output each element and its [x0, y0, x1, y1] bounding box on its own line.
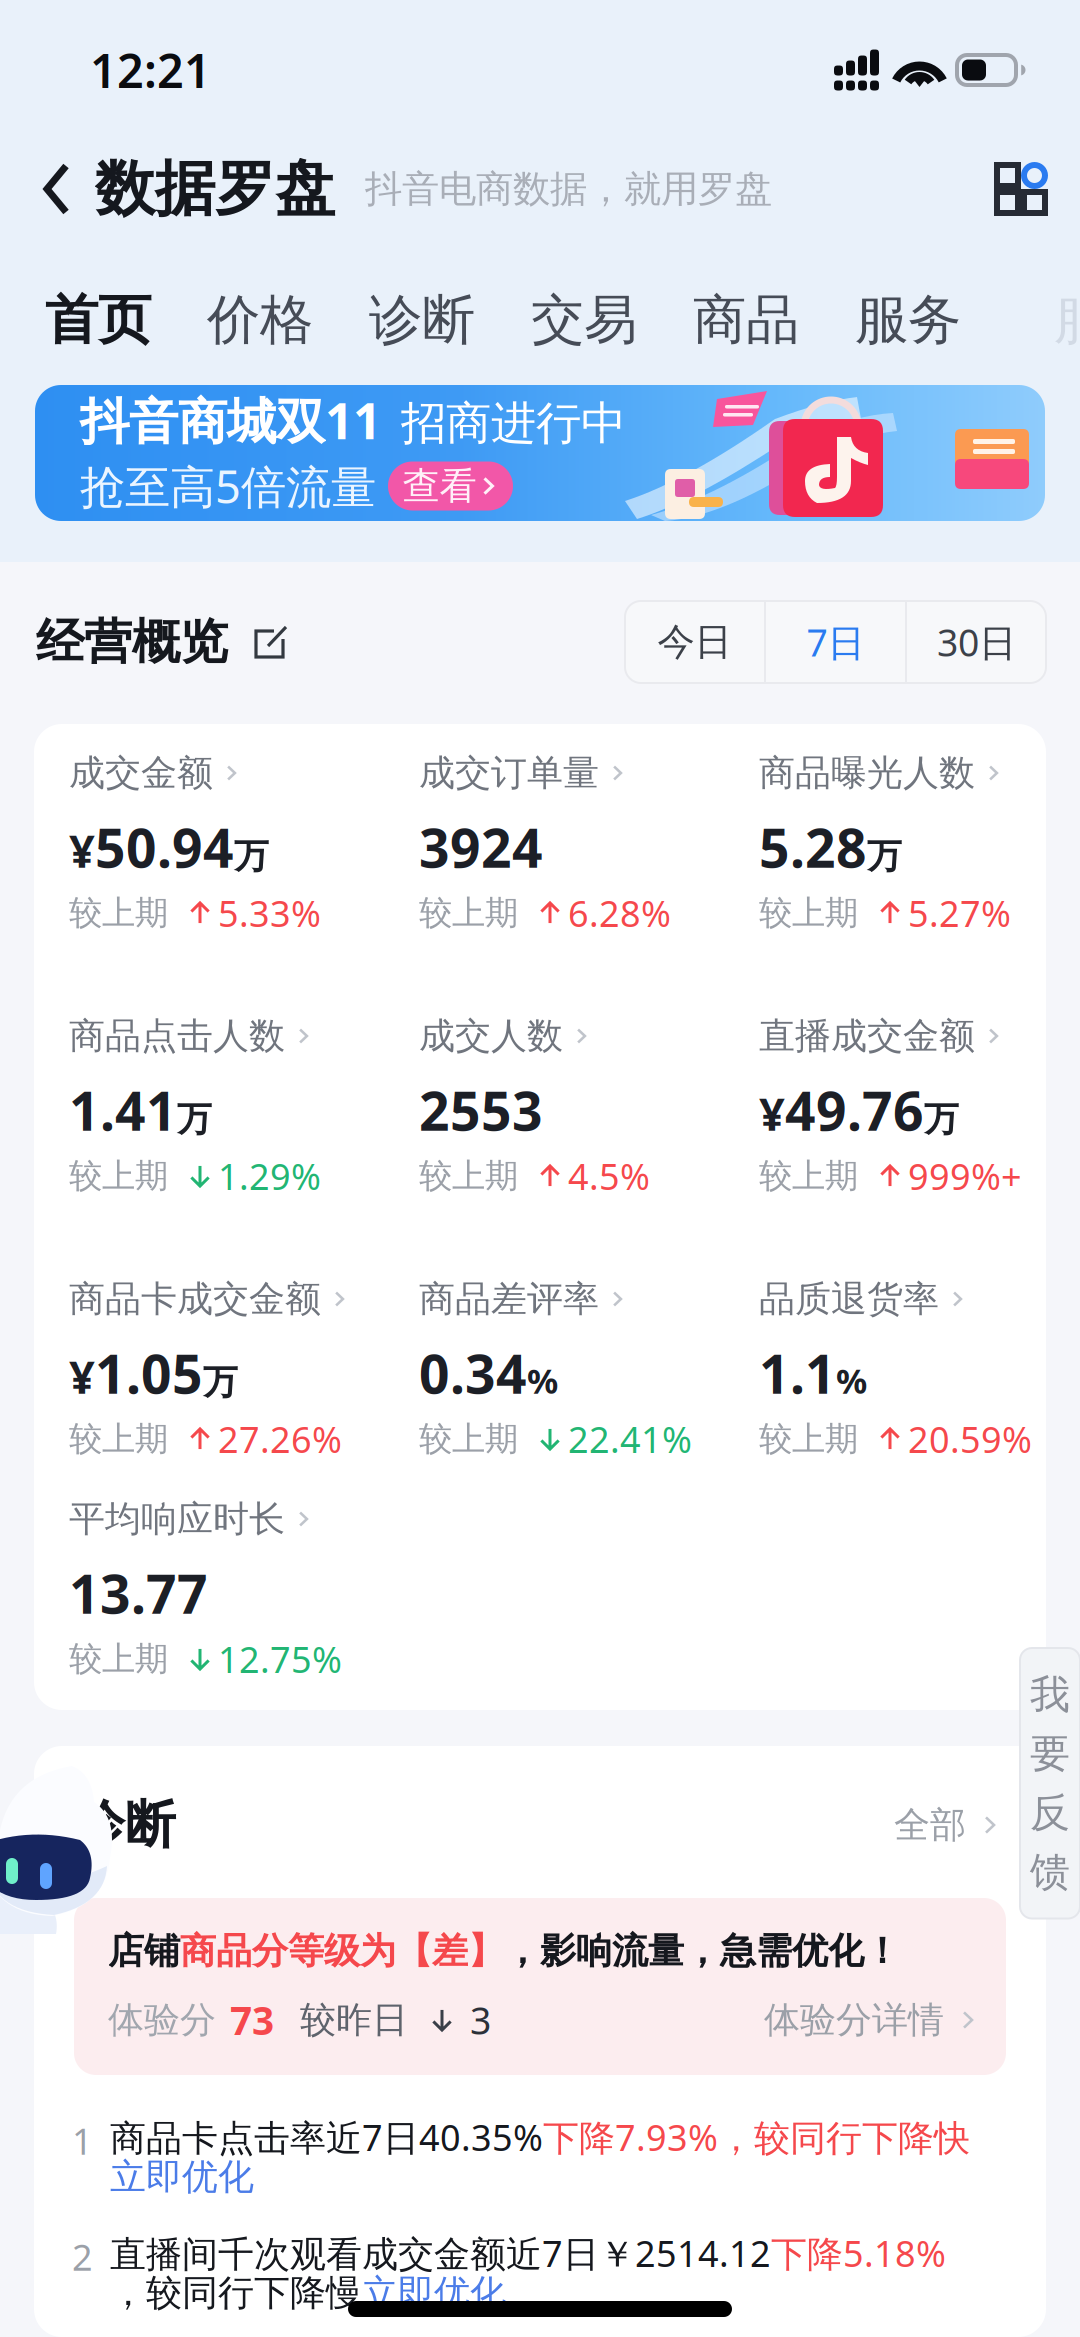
button[interactable]: 今日: [625, 601, 764, 683]
staticText: ，较同行下降慢: [110, 2271, 362, 2315]
staticText: 1.05: [95, 1338, 203, 1408]
staticText: 商品曝光人数: [759, 751, 975, 795]
staticText: 诊断: [74, 1794, 176, 1856]
staticText: 6.28%: [568, 889, 671, 937]
staticText: 5.28: [759, 812, 867, 882]
staticText: 万: [177, 1098, 212, 1140]
staticText: 直播成交金额: [759, 1014, 975, 1058]
staticText: 较上期: [69, 1638, 168, 1679]
staticText: 较上期: [759, 1155, 858, 1196]
staticText: 数据罗盘: [95, 152, 335, 226]
button[interactable]: 7日: [766, 601, 905, 683]
button[interactable]: 成交订单量: [419, 754, 759, 930]
staticText: 1: [72, 2117, 93, 2165]
button[interactable]: 立即优化: [362, 2271, 506, 2315]
button[interactable]: 立即优化: [110, 2157, 254, 2197]
staticText: 商品点击人数: [69, 1014, 285, 1058]
button[interactable]: 抖音商城双11: [0, 385, 1080, 521]
button[interactable]: 首页: [17, 270, 179, 370]
staticText: 万: [234, 835, 269, 877]
button[interactable]: 成交金额: [69, 754, 419, 930]
staticText: 成交订单量: [419, 751, 599, 795]
button[interactable]: 平均响应时长: [69, 1500, 419, 1676]
staticText: 服务: [855, 287, 961, 353]
button[interactable]: 体验分详情: [764, 1998, 978, 2042]
staticText: 商品差评率: [419, 1277, 599, 1321]
staticText: 招商进行中: [401, 395, 626, 451]
staticText: 万: [924, 1098, 959, 1140]
staticText: 较上期: [419, 1155, 518, 1196]
staticText: 较上期: [759, 1418, 858, 1459]
staticText: 较上期: [69, 1418, 168, 1459]
staticText: 今日: [657, 619, 731, 665]
staticText: ¥: [759, 1083, 785, 1143]
staticText: 抖音商城双11: [80, 387, 381, 453]
button[interactable]: 我: [1020, 1648, 1080, 1918]
staticText: 7日: [806, 617, 864, 667]
staticText: 我: [1030, 1670, 1070, 1719]
staticText: 1.41: [69, 1075, 177, 1145]
staticText: 商品: [693, 287, 799, 353]
staticText: 平均响应时长: [69, 1497, 285, 1541]
staticText: 50.94: [95, 812, 234, 882]
staticText: 3: [470, 1995, 491, 2045]
staticText: 较昨日: [300, 1998, 408, 2042]
staticText: 0.34: [419, 1338, 527, 1408]
staticText: 较上期: [759, 892, 858, 933]
staticText: 诊断: [369, 287, 475, 353]
button[interactable]: 30日: [907, 601, 1046, 683]
staticText: ¥: [69, 820, 95, 880]
button[interactable]: 诊断: [341, 270, 503, 370]
staticText: %: [836, 1357, 867, 1403]
staticText: 73: [230, 1994, 274, 2046]
staticText: 较上期: [419, 1418, 518, 1459]
staticText: ，影响流量，急需优化！: [504, 1929, 900, 1973]
staticText: 价格: [207, 287, 313, 353]
staticText: 商品分等级为【差】: [180, 1929, 504, 1973]
staticText: 下降5.18%: [771, 2229, 946, 2277]
staticText: 成交人数: [419, 1014, 563, 1058]
button[interactable]: Apps: [976, 144, 1066, 234]
button[interactable]: 商品差评率: [419, 1280, 759, 1456]
staticText: 万: [203, 1361, 238, 1403]
staticText: 首页: [45, 287, 151, 353]
staticText: 交易: [531, 287, 637, 353]
staticText: 馈: [1030, 1847, 1070, 1896]
staticText: 成交金额: [69, 751, 213, 795]
staticText: 30日: [937, 617, 1016, 667]
staticText: 较上期: [69, 1155, 168, 1196]
staticText: 12:21: [90, 39, 211, 101]
staticText: 较上期: [69, 892, 168, 933]
button[interactable]: 商品: [665, 270, 827, 370]
staticText: 经营概览: [36, 612, 228, 671]
button[interactable]: Edit: [248, 619, 294, 665]
staticText: 13.77: [69, 1558, 208, 1628]
staticText: 49.76: [785, 1075, 924, 1145]
button[interactable]: 价格: [179, 270, 341, 370]
staticText: 查看: [402, 463, 476, 509]
staticText: 27.26%: [218, 1415, 342, 1463]
staticText: 商品卡点击率近7日40.35%: [110, 2113, 543, 2161]
button[interactable]: 商品曝光人数: [759, 754, 1046, 930]
button[interactable]: 服务: [827, 270, 989, 370]
button[interactable]: 品质退货率: [759, 1280, 1046, 1456]
staticText: 12.75%: [218, 1635, 342, 1683]
button[interactable]: 成交人数: [419, 1017, 759, 1193]
button[interactable]: 商品点击人数: [69, 1017, 419, 1193]
staticText: 品质退货率: [759, 1277, 939, 1321]
button[interactable]: 全部: [894, 1795, 1000, 1855]
button[interactable]: 交易: [503, 270, 665, 370]
button[interactable]: 商品卡成交金额: [69, 1280, 419, 1456]
staticText: 5.33%: [218, 889, 321, 937]
staticText: 2: [72, 2233, 93, 2281]
button[interactable]: Back: [30, 147, 83, 231]
staticText: 较上期: [419, 892, 518, 933]
button[interactable]: 直播成交金额: [759, 1017, 1046, 1193]
staticText: 要: [1030, 1729, 1070, 1778]
staticText: 999%+: [908, 1152, 1022, 1200]
staticText: 4.5%: [568, 1152, 650, 1200]
staticText: 22.41%: [568, 1415, 692, 1463]
staticText: 抢至高5倍流量: [80, 456, 376, 516]
staticText: 体验分详情: [764, 1998, 944, 2042]
staticText: 万: [867, 835, 902, 877]
